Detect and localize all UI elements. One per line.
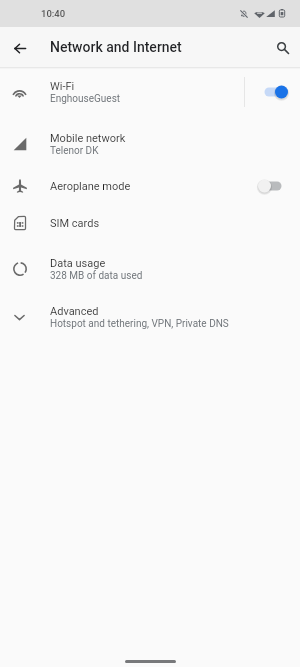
button[interactable]: Data usage bbox=[0, 244, 300, 294]
button[interactable]: Switch off bbox=[258, 175, 288, 197]
staticText: EnghouseGuest bbox=[50, 93, 121, 105]
staticText: Aeroplane mode bbox=[50, 180, 131, 193]
button[interactable]: Mobile network bbox=[0, 119, 300, 169]
button[interactable]: Back bbox=[0, 27, 40, 67]
button[interactable]: Aeroplane mode bbox=[0, 168, 300, 204]
staticText: Hotspot and tethering, VPN, Private DNS bbox=[50, 318, 229, 330]
button[interactable]: SIM cards bbox=[0, 205, 300, 241]
staticText: Wi-Fi bbox=[50, 80, 75, 93]
staticText: Network and Internet bbox=[50, 39, 182, 55]
button[interactable]: Switch on bbox=[258, 81, 288, 103]
button[interactable]: Wi-Fi bbox=[0, 67, 300, 117]
staticText: Telenor DK bbox=[50, 145, 99, 157]
staticText: 328 MB of data used bbox=[50, 270, 143, 282]
staticText: SIM cards bbox=[50, 217, 100, 230]
button[interactable]: Advanced bbox=[0, 292, 300, 342]
button[interactable]: Search bbox=[264, 27, 300, 67]
staticText: Advanced bbox=[50, 305, 99, 318]
staticText: Data usage bbox=[50, 257, 106, 270]
staticText: Mobile network bbox=[50, 132, 126, 145]
staticText: 10:40 bbox=[41, 8, 66, 19]
